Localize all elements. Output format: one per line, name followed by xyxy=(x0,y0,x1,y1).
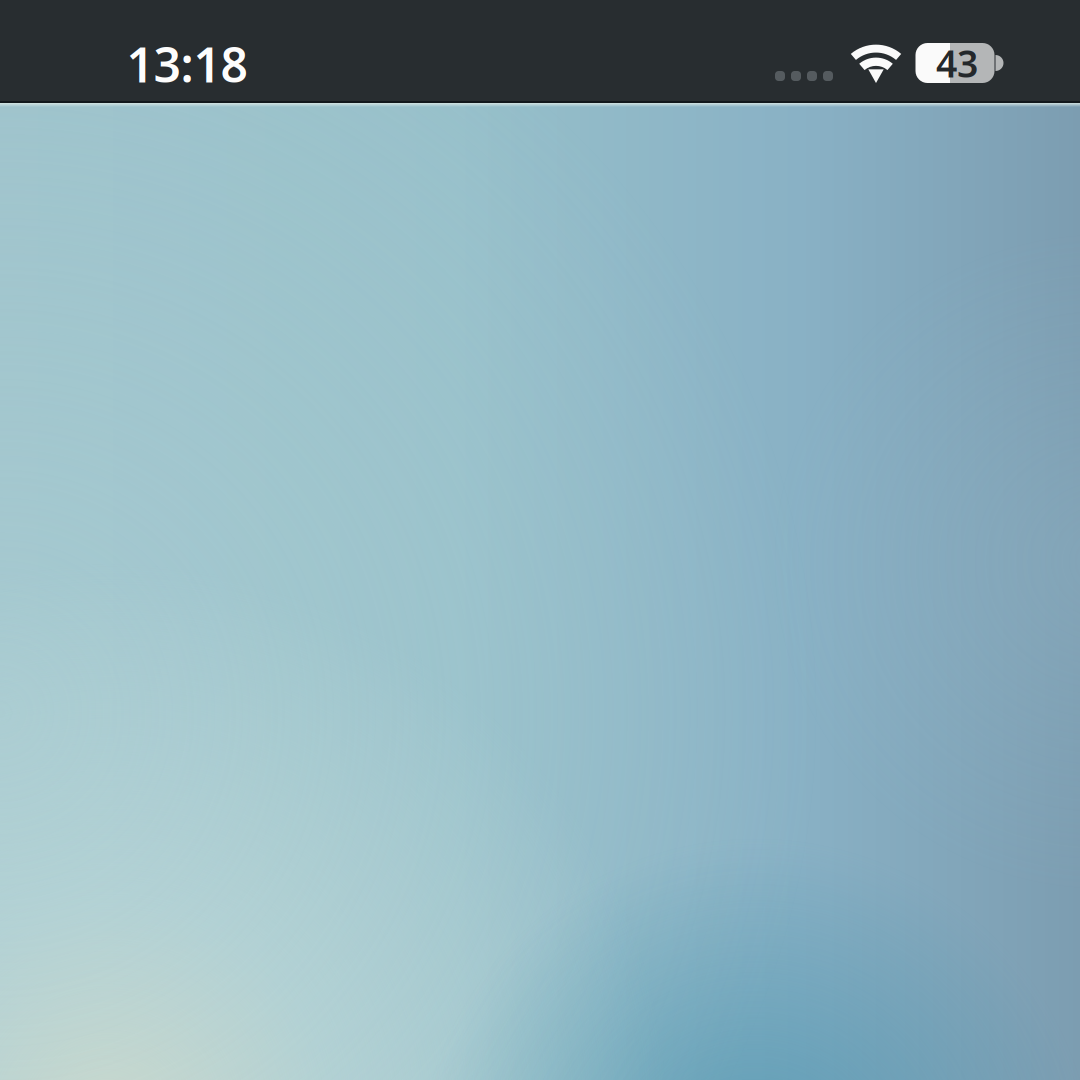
button[interactable]: 13:18 xyxy=(112,34,262,94)
button[interactable]: Status: no service, Wi-Fi connected, bat… xyxy=(756,33,986,93)
staticText: 13:18 xyxy=(126,32,247,96)
staticText: 43 xyxy=(936,38,978,88)
